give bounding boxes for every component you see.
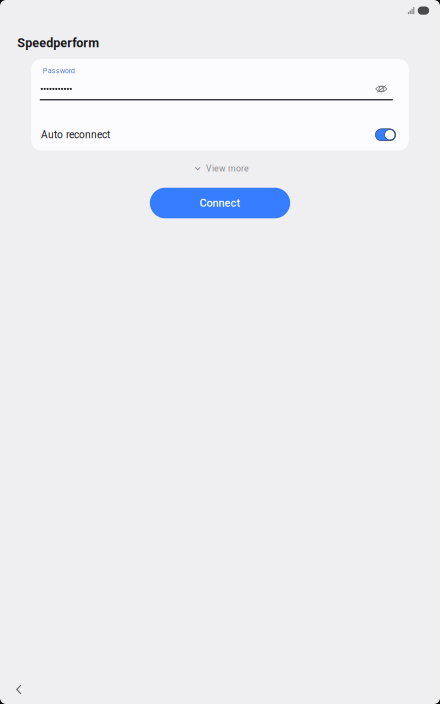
button[interactable]: Auto reconnect — [375, 129, 396, 141]
staticText: View more — [206, 163, 249, 174]
button[interactable]: View more — [191, 159, 249, 178]
button[interactable]: Back — [10, 678, 28, 700]
button[interactable]: Show password — [373, 83, 390, 95]
staticText: Speedperform — [17, 36, 99, 50]
staticText: Auto reconnect — [41, 129, 110, 141]
button[interactable]: Connect — [150, 188, 290, 218]
staticText: Connect — [199, 197, 240, 209]
staticText: Password — [43, 67, 75, 75]
